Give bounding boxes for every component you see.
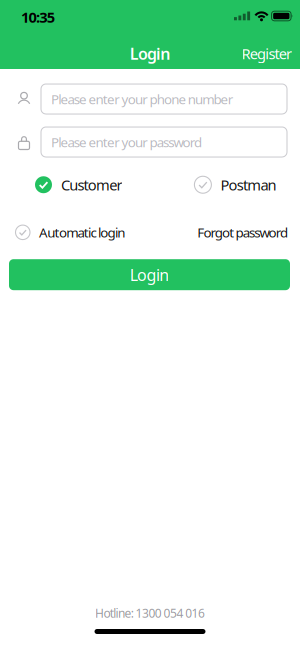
button[interactable]: Login bbox=[9, 259, 290, 290]
button[interactable]: Register bbox=[242, 41, 292, 60]
button[interactable]: Please enter your password bbox=[41, 127, 287, 157]
button[interactable]: Postman bbox=[194, 175, 277, 194]
button[interactable]: Please enter your phone number bbox=[41, 84, 287, 114]
staticText: Please enter your phone number bbox=[51, 90, 234, 108]
button[interactable]: Customer bbox=[35, 175, 122, 194]
staticText: Automatic login bbox=[39, 223, 125, 241]
staticText: Login bbox=[130, 43, 170, 64]
staticText: Forgot password bbox=[197, 223, 288, 241]
staticText: Please enter your password bbox=[51, 133, 202, 151]
button[interactable]: Forgot password bbox=[197, 223, 288, 241]
staticText: Customer bbox=[61, 175, 122, 194]
staticText: 10:35 bbox=[21, 7, 55, 27]
staticText: Login bbox=[130, 264, 169, 285]
button[interactable]: Automatic login bbox=[15, 223, 125, 241]
staticText: Postman bbox=[220, 175, 277, 194]
staticText: Hotline: 1300 054 016 bbox=[95, 605, 205, 621]
staticText: Register bbox=[242, 44, 292, 63]
